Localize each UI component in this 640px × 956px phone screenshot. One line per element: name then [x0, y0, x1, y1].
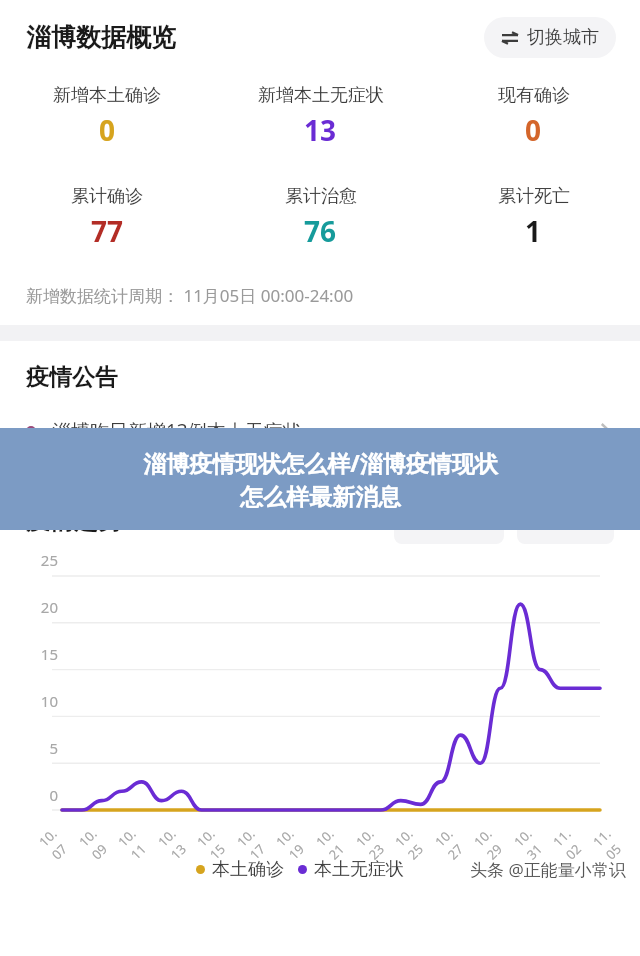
staticText: 累计治愈: [285, 185, 357, 208]
staticText: 新增: [537, 509, 575, 533]
button[interactable]: 新增本土确诊: [0, 84, 214, 149]
staticText: 10.31: [510, 821, 552, 863]
staticText: 10.19: [272, 821, 314, 863]
staticText: 10.09: [75, 821, 117, 863]
button[interactable]: 新增本土无症状: [214, 84, 427, 149]
staticText: 11.02: [549, 821, 591, 863]
button[interactable]: 淄博昨日新增13例本土无症状: [0, 418, 640, 444]
staticText: 新增数据统计周期： 11月05日 00:00-24:00: [26, 284, 354, 307]
staticText: 10.13: [154, 821, 196, 863]
staticText: 25: [30, 550, 58, 570]
other: Switch city: [501, 29, 519, 47]
staticText: 淄博昨日新增13例本土无症状: [52, 418, 596, 444]
staticText: 淄博疫情现状怎么样/淄博疫情现状 怎么样最新消息: [143, 447, 498, 511]
staticText: 0: [525, 111, 542, 149]
staticText: 30 天: [416, 508, 462, 534]
staticText: 疫情公告: [26, 363, 118, 392]
staticText: 10.25: [391, 821, 433, 863]
button[interactable]: 30 天: [394, 498, 504, 544]
staticText: 头条 @正能量小常识: [470, 858, 626, 881]
staticText: 20: [30, 597, 58, 617]
staticText: 累计确诊: [71, 185, 143, 208]
staticText: 新增本土无症状: [258, 84, 384, 107]
staticText: 疫情趋势: [26, 506, 122, 536]
staticText: 77: [91, 212, 124, 250]
staticText: 10: [30, 691, 58, 711]
staticText: 13: [304, 111, 337, 149]
staticText: 累计死亡: [498, 185, 570, 208]
button[interactable]: 新增: [517, 498, 614, 544]
staticText: 10.27: [431, 821, 473, 863]
button[interactable]: Switch city: [484, 17, 616, 58]
staticText: 10.15: [193, 821, 235, 863]
staticText: 10.11: [114, 821, 156, 863]
staticText: 新增本土确诊: [53, 84, 161, 107]
staticText: 15: [30, 644, 58, 664]
button[interactable]: 累计确诊: [0, 185, 214, 250]
staticText: 76: [304, 212, 337, 250]
staticText: 切换城市: [527, 26, 599, 49]
staticText: 10.29: [470, 821, 512, 863]
button[interactable]: 累计死亡: [427, 185, 640, 250]
staticText: 1: [525, 212, 542, 250]
staticText: 淄博数据概览: [26, 22, 176, 53]
staticText: 10.07: [35, 821, 77, 863]
staticText: 现有确诊: [498, 84, 570, 107]
staticText: 10.21: [312, 821, 354, 863]
button[interactable]: 现有确诊: [427, 84, 640, 149]
staticText: 本土确诊: [212, 858, 284, 881]
staticText: 10.17: [233, 821, 275, 863]
staticText: 11.05: [589, 821, 631, 863]
button[interactable]: 累计治愈: [214, 185, 427, 250]
staticText: 0: [30, 785, 58, 805]
staticText: 0: [99, 111, 116, 149]
staticText: 本土无症状: [314, 858, 404, 881]
staticText: 5: [30, 738, 58, 758]
staticText: 10.23: [352, 821, 394, 863]
